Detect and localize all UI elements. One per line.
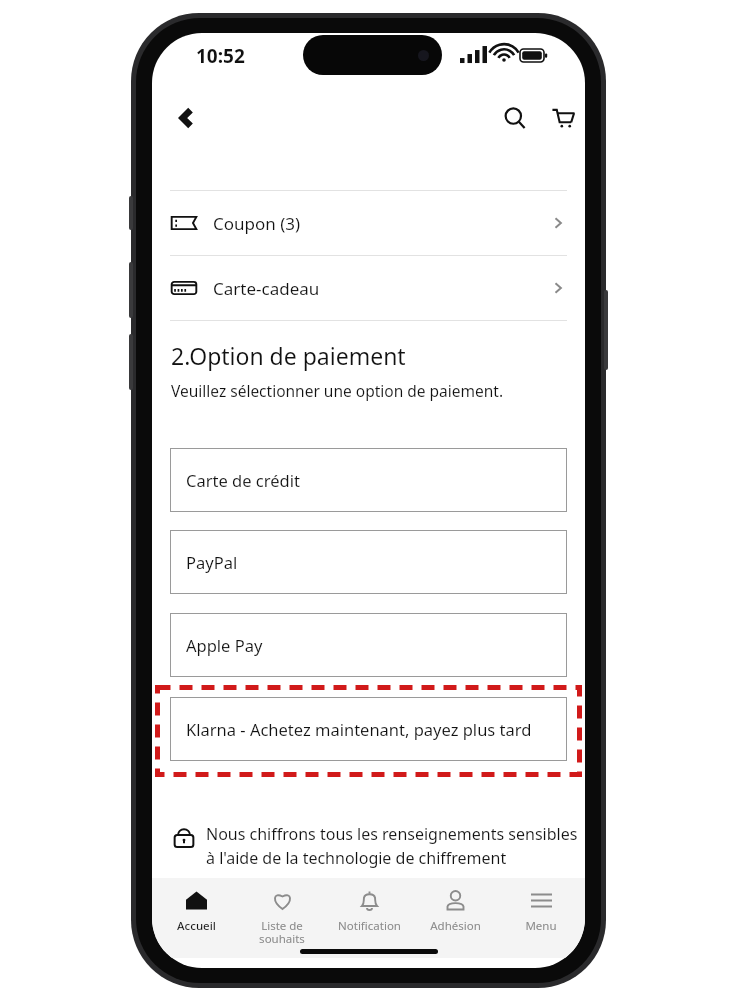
staticText: PayPal [186,551,238,573]
staticText: Carte-cadeau [213,277,320,300]
button[interactable]: Cart [540,95,585,141]
staticText: Klarna - Achetez maintenant, payez plus … [186,718,532,740]
button[interactable]: Coupon (3) [170,191,567,255]
staticText: Coupon (3) [213,212,301,235]
button[interactable]: Search [492,95,538,141]
staticText: Notification [338,918,401,934]
button[interactable]: Accueil [154,888,238,958]
staticText: Menu [525,918,557,934]
button[interactable]: Klarna - Achetez maintenant, payez plus … [170,697,567,761]
staticText: Adhésion [430,918,481,934]
button[interactable]: Adhésion [413,888,497,958]
staticText: 10:52 [196,43,245,69]
button[interactable]: Liste de souhaits [240,888,324,958]
button[interactable]: Carte-cadeau [170,256,567,320]
staticText: Accueil [177,918,216,934]
staticText: Liste de souhaits [259,918,305,947]
button[interactable]: Notification [327,888,411,958]
button[interactable]: Menu [499,888,583,958]
button[interactable]: Carte de crédit [170,448,567,512]
staticText: Apple Pay [186,634,263,656]
staticText: Nous chiffrons tous les renseignements s… [206,823,584,869]
button[interactable]: Apple Pay [170,613,567,677]
button[interactable]: Back [164,95,210,141]
staticText: Carte de crédit [186,469,300,491]
staticText: Veuillez sélectionner une option de paie… [171,380,504,401]
staticText: 2.Option de paiement [171,340,406,371]
button[interactable]: PayPal [170,530,567,594]
